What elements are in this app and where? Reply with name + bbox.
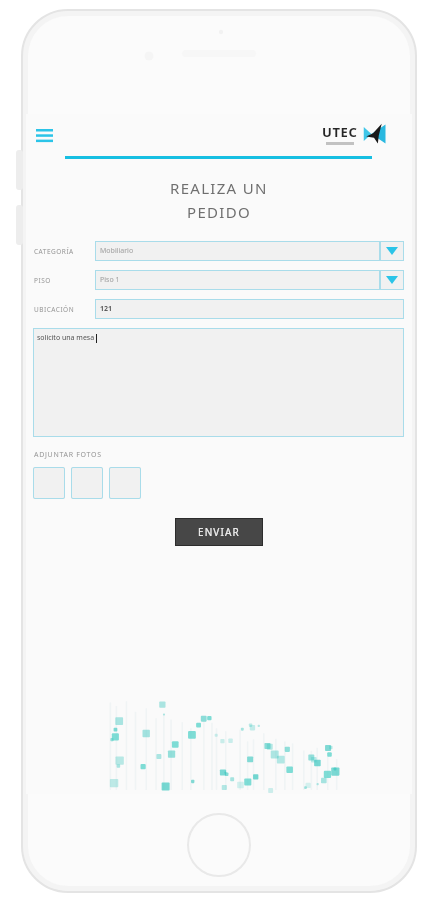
button[interactable]: solicito una mesa: [33, 328, 404, 437]
button[interactable]: Adjuntar foto: [109, 467, 141, 499]
staticText: CATEGORÍA: [34, 247, 74, 256]
button[interactable]: Menu: [29, 120, 59, 150]
staticText: ENVIAR: [198, 525, 240, 539]
staticText: solicito una mesa: [37, 333, 95, 343]
button[interactable]: Mobiliario: [95, 241, 404, 261]
staticText: UBICACIÓN: [34, 305, 75, 314]
button[interactable]: 121: [95, 299, 404, 319]
staticText: Mobiliario: [100, 246, 134, 256]
staticText: PEDIDO: [187, 202, 251, 222]
button[interactable]: Adjuntar foto: [33, 467, 65, 499]
staticText: PISO: [34, 276, 51, 285]
staticText: Piso 1: [100, 275, 120, 285]
button[interactable]: Piso 1: [95, 270, 404, 290]
staticText: ADJUNTAR FOTOS: [34, 450, 102, 460]
staticText: UTEC: [322, 123, 358, 141]
staticText: REALIZA UN: [170, 178, 268, 198]
staticText: 121: [100, 304, 113, 314]
button[interactable]: Adjuntar foto: [71, 467, 103, 499]
button[interactable]: ENVIAR: [175, 518, 263, 546]
button[interactable]: UTEC: [322, 118, 390, 150]
